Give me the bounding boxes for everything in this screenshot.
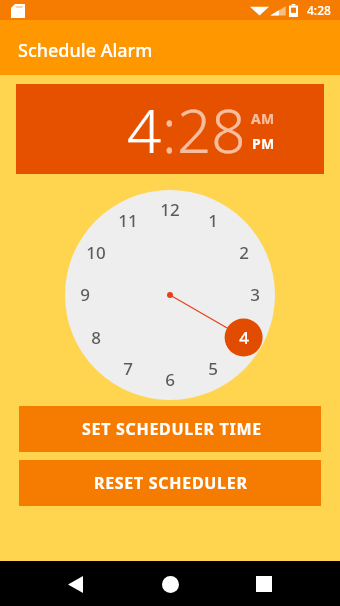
button[interactable]: 28 bbox=[177, 88, 246, 170]
staticText: Schedule Alarm bbox=[18, 38, 153, 63]
staticText: 1 bbox=[208, 209, 218, 232]
button[interactable]: SET SCHEDULER TIME bbox=[19, 406, 321, 452]
staticText: 12 bbox=[160, 198, 180, 221]
staticText: 7 bbox=[123, 357, 133, 380]
button[interactable]: PM bbox=[252, 134, 275, 153]
staticText: 5 bbox=[208, 357, 218, 380]
staticText: RESET SCHEDULER bbox=[94, 472, 248, 494]
staticText: 3 bbox=[250, 283, 260, 306]
staticText: 8 bbox=[91, 326, 101, 349]
staticText: 9 bbox=[80, 283, 90, 306]
button[interactable]: Recents bbox=[242, 562, 286, 606]
button[interactable]: AM bbox=[251, 109, 275, 128]
staticText: 4:28 bbox=[307, 2, 331, 18]
button[interactable]: Home bbox=[148, 562, 192, 606]
button[interactable]: RESET SCHEDULER bbox=[19, 460, 321, 506]
button[interactable]: 4 bbox=[127, 88, 162, 170]
staticText: 11 bbox=[118, 209, 138, 232]
staticText: 2 bbox=[239, 241, 249, 264]
staticText: : bbox=[162, 89, 177, 171]
staticText: SET SCHEDULER TIME bbox=[82, 418, 262, 440]
staticText: 10 bbox=[86, 241, 106, 264]
staticText: 4 bbox=[239, 326, 249, 349]
staticText: 6 bbox=[165, 368, 175, 391]
button[interactable]: Back bbox=[53, 562, 97, 606]
